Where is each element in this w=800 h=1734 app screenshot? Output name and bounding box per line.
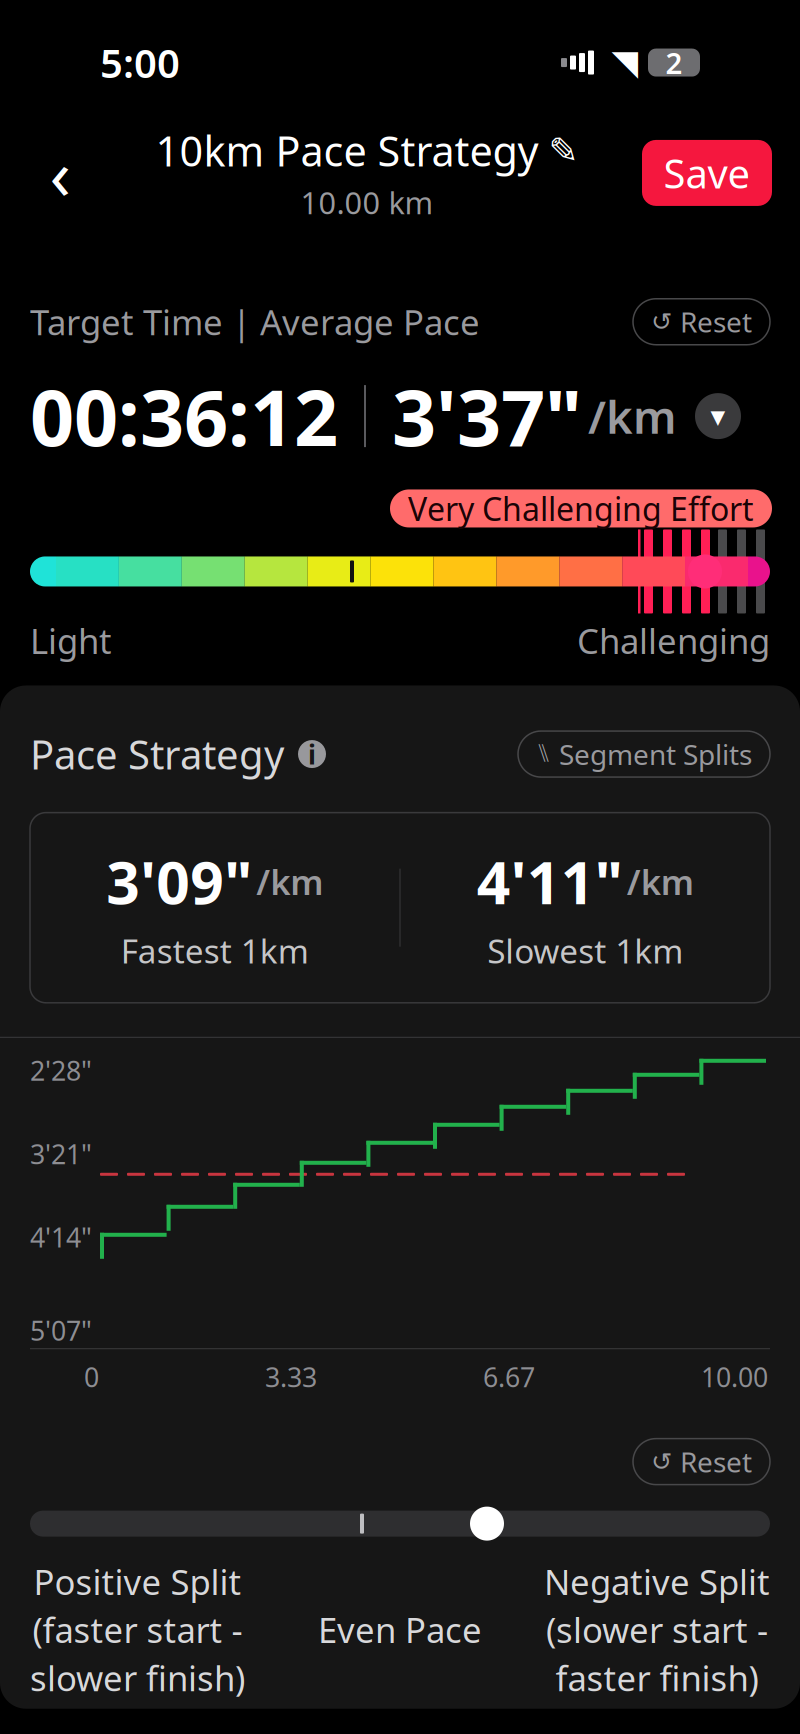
button[interactable]: ↺ — [633, 299, 770, 345]
staticText: ▾ — [710, 399, 725, 433]
staticText: Light — [30, 617, 112, 663]
staticText: Reset — [680, 303, 752, 340]
staticText: 10km Pace Strategy — [155, 123, 538, 178]
staticText: 3'21" — [30, 1136, 92, 1171]
staticText: Positive Split — [33, 1559, 241, 1605]
staticText: Fastest 1km — [121, 928, 309, 973]
staticText: 10.00 km — [300, 182, 433, 223]
staticText: slower finish) — [30, 1655, 245, 1701]
staticText: (slower start - — [546, 1607, 768, 1653]
staticText: 2 — [665, 43, 682, 82]
staticText: ✎ — [548, 130, 578, 171]
button[interactable]: About pace strategy — [298, 740, 326, 768]
staticText: /km — [256, 859, 323, 905]
staticText: 10.00 — [701, 1359, 768, 1395]
button[interactable]: ↺ — [633, 1439, 770, 1485]
staticText: 00:36:12 — [30, 365, 338, 467]
staticText: Save — [663, 146, 750, 199]
button[interactable]: Rename — [548, 134, 578, 168]
staticText: Negative Split — [544, 1559, 770, 1605]
staticText: 0 — [84, 1359, 99, 1395]
staticText: ⑊ — [536, 742, 551, 766]
staticText: ↺ — [651, 1447, 672, 1476]
staticText: 3'37" — [392, 365, 582, 467]
staticText: ↺ — [651, 307, 672, 336]
staticText: 3'09" — [106, 843, 252, 920]
button[interactable]: ⑊ — [518, 731, 770, 777]
staticText: 5:00 — [100, 36, 180, 89]
staticText: 6.67 — [483, 1359, 535, 1395]
staticText: /km — [588, 386, 677, 446]
staticText: /km — [627, 859, 694, 905]
staticText: ‹ — [49, 127, 70, 219]
button[interactable]: Back — [28, 135, 92, 211]
staticText: 3.33 — [265, 1359, 317, 1395]
staticText: 4'14" — [30, 1219, 92, 1255]
staticText: ◥ — [611, 43, 638, 82]
staticText: Very Challenging Effort — [408, 487, 754, 530]
staticText: (faster start - — [32, 1607, 242, 1653]
staticText: Slowest 1km — [487, 928, 683, 973]
button[interactable]: Save — [642, 140, 772, 206]
staticText: 4'11" — [477, 843, 623, 920]
staticText: Even Pace — [318, 1607, 482, 1653]
staticText: i — [308, 736, 316, 772]
staticText: 2'28" — [30, 1053, 92, 1088]
staticText: Segment Splits — [559, 735, 752, 773]
staticText: Pace Strategy — [30, 727, 284, 781]
staticText: Challenging — [577, 617, 770, 663]
staticText: 5'07" — [30, 1313, 92, 1348]
staticText: faster finish) — [555, 1655, 758, 1701]
button[interactable]: Change pace unit — [695, 393, 741, 439]
staticText: Reset — [680, 1443, 752, 1480]
staticText: Target Time | Average Pace — [30, 299, 480, 345]
